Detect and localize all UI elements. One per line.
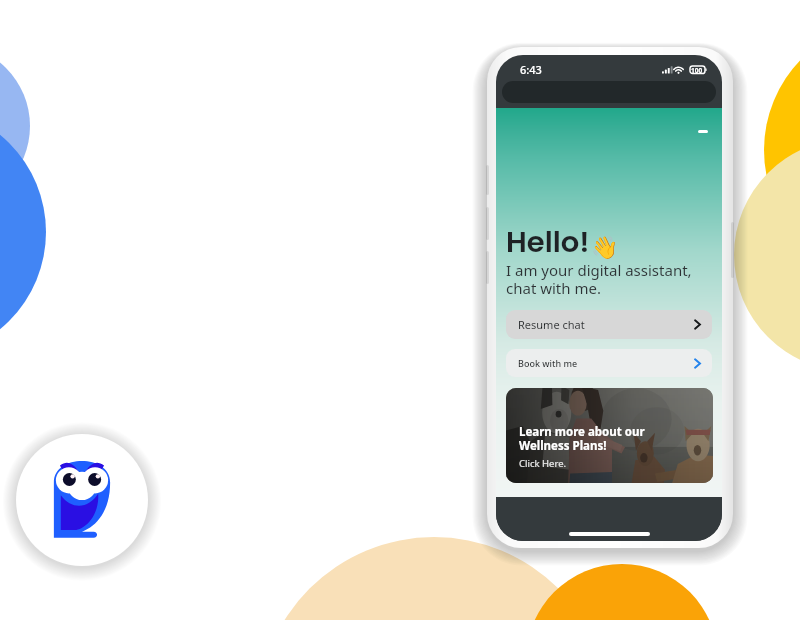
staticText: I am your digital assistant, chat with m… [506,260,692,298]
staticText: Learn more about our Wellness Plans! [519,424,645,453]
staticText: Hello! [506,222,590,263]
button[interactable]: Book with me [506,349,712,377]
staticText: 6:43 [520,62,542,77]
button[interactable]: Minimize [690,121,716,141]
button[interactable]: Assistant logo [6,424,158,576]
staticText: 👋 [591,235,619,261]
staticText: Resume chat [518,317,585,332]
button[interactable]: Learn more about our Wellness Plans! [506,388,713,483]
staticText: 100 [691,66,703,75]
staticText: Book with me [518,357,578,369]
button[interactable]: Resume chat [506,310,712,339]
staticText: Click Here. [519,457,567,470]
